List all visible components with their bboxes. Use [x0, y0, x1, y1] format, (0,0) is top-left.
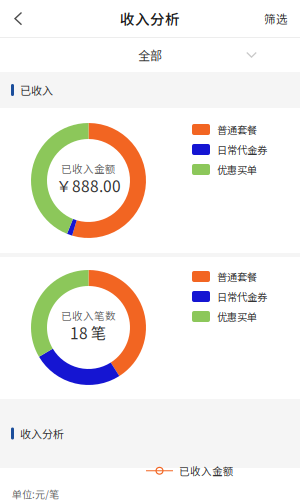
staticText: 普通套餐 — [217, 122, 257, 137]
button[interactable]: 筛选 — [264, 0, 300, 37]
button[interactable]: 返回 — [0, 0, 40, 37]
staticText: 全部 — [138, 46, 162, 64]
staticText: 普通套餐 — [217, 269, 257, 284]
staticText: 收入分析 — [20, 425, 64, 441]
staticText: 18 笔 — [70, 321, 107, 344]
staticText: 日常代金券 — [217, 289, 267, 304]
staticText: 单位:元/笔 — [12, 487, 59, 500]
staticText: 优惠买单 — [217, 309, 257, 324]
staticText: 筛选 — [264, 10, 288, 27]
staticText: 已收入金额 — [179, 463, 234, 478]
staticText: 已收入金额 — [61, 161, 116, 176]
staticText: 已收入笔数 — [61, 308, 116, 323]
staticText: 日常代金券 — [217, 142, 267, 157]
staticText: 优惠买单 — [217, 162, 257, 177]
staticText: ￥888.00 — [56, 174, 121, 197]
staticText: 收入分析 — [120, 8, 180, 29]
staticText: 已收入 — [20, 82, 53, 98]
button[interactable]: 全部 — [0, 38, 300, 72]
